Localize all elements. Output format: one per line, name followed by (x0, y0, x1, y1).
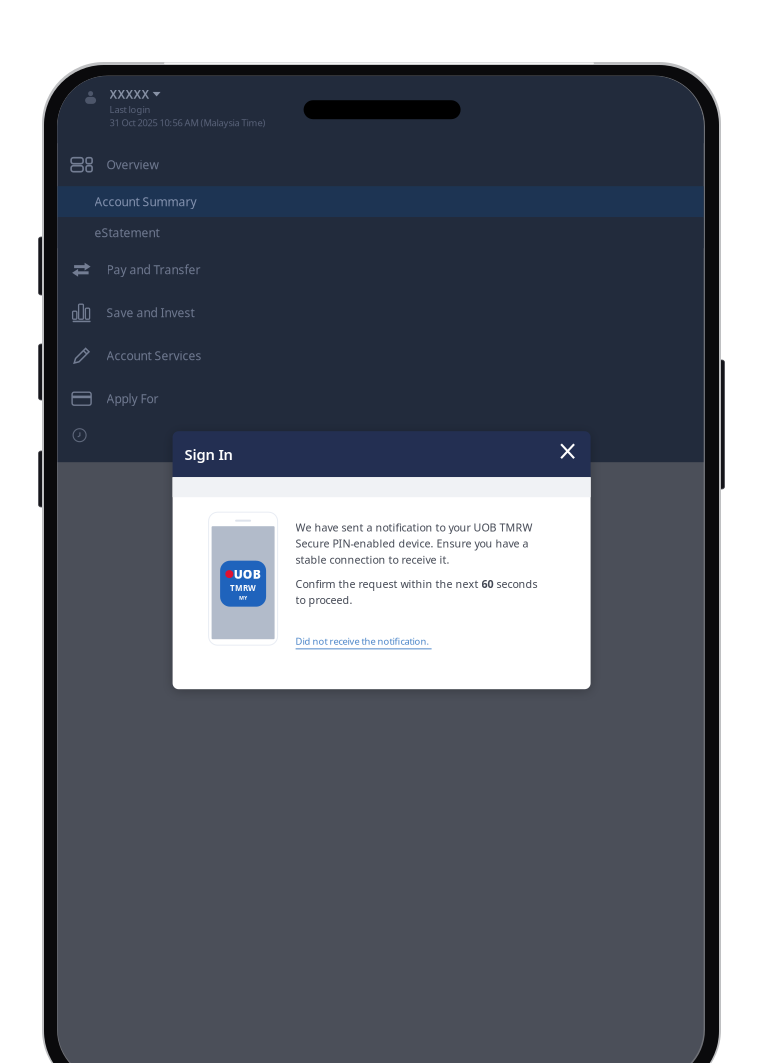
staticText: Confirm the request within the next (296, 577, 482, 591)
button[interactable]: Did not receive the notification. (296, 635, 432, 649)
staticText: seconds (494, 577, 538, 591)
button[interactable]: Close (545, 431, 591, 477)
staticText: UOB (234, 566, 261, 582)
staticText: We have sent a notification to your UOB … (296, 520, 533, 534)
staticText: Save and Invest (107, 305, 195, 321)
staticText: Last login (110, 103, 151, 115)
staticText: Account Summary (95, 194, 197, 210)
button[interactable]: Pay and Transfer (58, 248, 704, 291)
button[interactable]: Account Summary (58, 186, 704, 217)
button[interactable]: Overview (58, 143, 704, 186)
staticText: stable connection to receive it. (296, 552, 450, 567)
staticText: Overview (107, 157, 159, 173)
button[interactable]: Save and Invest (58, 291, 704, 334)
staticText: Pay and Transfer (107, 262, 201, 278)
button[interactable]: Apply For (58, 377, 704, 420)
staticText: to proceed. (296, 593, 353, 607)
staticText: Secure PIN-enabled device. Ensure you ha… (296, 536, 529, 551)
staticText: 60 (482, 577, 494, 591)
staticText: 31 Oct 2025 10:56 AM (Malaysia Time) (110, 116, 266, 129)
staticText: MY (239, 594, 247, 601)
staticText: XXXXX (110, 86, 150, 102)
staticText: eStatement (95, 225, 160, 241)
button[interactable]: Account Services (58, 334, 704, 377)
staticText: Account Services (107, 348, 202, 364)
button[interactable]: eStatement (58, 217, 704, 248)
staticText: Sign In (185, 444, 233, 464)
staticText: Did not receive the notification. (296, 635, 430, 647)
staticText: Apply For (107, 391, 159, 407)
staticText: TMRW (230, 583, 256, 593)
